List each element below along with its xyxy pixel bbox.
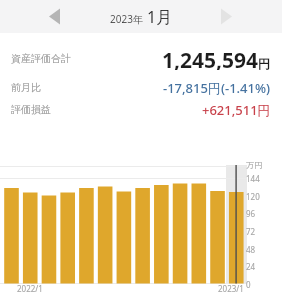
staticText: 144 (246, 173, 260, 184)
staticText: 資産評価合計 (11, 52, 71, 65)
staticText: 2023/1 (218, 283, 244, 294)
button[interactable] (36, 0, 72, 33)
staticText: 2023年 (110, 12, 143, 26)
staticText: 0 (246, 279, 251, 290)
staticText: 72 (246, 226, 256, 237)
button[interactable]: 2023年 (110, 6, 173, 28)
button[interactable] (0, 160, 247, 293)
staticText: 1月 (147, 6, 173, 28)
button[interactable] (210, 0, 246, 33)
staticText: +621,511円 (202, 101, 271, 119)
staticText: 1,245,594円 (162, 46, 271, 70)
staticText: 2022/1 (17, 283, 43, 294)
staticText: -17,815円(-1.41%) (163, 79, 271, 97)
staticText: 48 (246, 244, 256, 255)
staticText: 120 (246, 191, 260, 202)
staticText: 前月比 (11, 81, 41, 94)
staticText: 万円 (246, 160, 262, 170)
staticText: 評価損益 (11, 103, 51, 116)
staticText: 96 (246, 208, 256, 219)
staticText: 24 (246, 261, 256, 272)
